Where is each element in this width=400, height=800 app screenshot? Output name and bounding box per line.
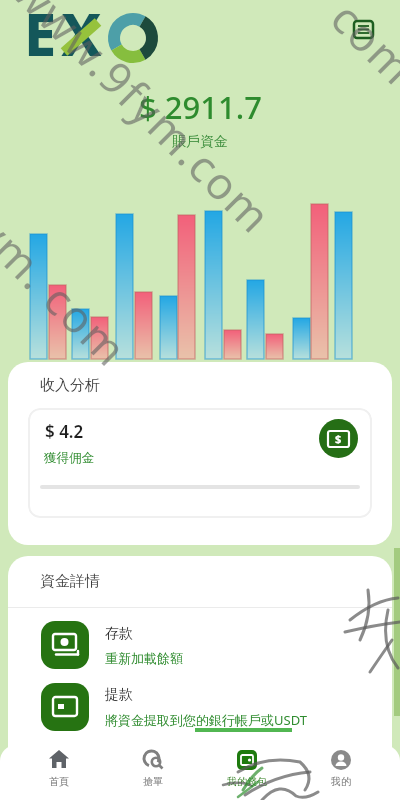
button[interactable]: 存款 bbox=[41, 621, 381, 669]
button[interactable]: 搶單 bbox=[106, 745, 200, 800]
button[interactable]: 我的 bbox=[294, 745, 388, 800]
staticText: 存款 bbox=[105, 625, 133, 643]
staticText: ym. com bbox=[0, 203, 141, 379]
button[interactable]: 我的錢包 bbox=[200, 745, 294, 800]
staticText: 賬戶資金 bbox=[172, 133, 228, 151]
button[interactable] bbox=[352, 20, 376, 40]
staticText: $ 4.2 bbox=[45, 420, 84, 443]
staticText: EX bbox=[24, 0, 107, 73]
staticText: 我的 bbox=[331, 775, 351, 788]
staticText: 我的錢包 bbox=[227, 775, 267, 788]
staticText: 搶單 bbox=[143, 775, 163, 788]
staticText: $ 2911.7 bbox=[139, 86, 262, 128]
staticText: 收入分析 bbox=[40, 376, 100, 395]
staticText: $ bbox=[335, 431, 342, 446]
staticText: com bbox=[319, 0, 400, 98]
staticText: 資金詳情 bbox=[40, 572, 100, 591]
staticText: 將資金提取到您的銀行帳戶或USDT bbox=[105, 711, 307, 729]
button[interactable]: 首頁 bbox=[12, 745, 106, 800]
staticText: 提款 bbox=[105, 686, 133, 704]
staticText: www.9fym.com bbox=[1, 0, 286, 246]
staticText: 首頁 bbox=[49, 775, 69, 788]
button[interactable]: 提款 bbox=[41, 683, 381, 731]
staticText: 獲得佣金 bbox=[44, 450, 94, 466]
button[interactable]: $ 4.2 bbox=[28, 408, 372, 518]
staticText: 重新加載餘額 bbox=[105, 650, 183, 666]
